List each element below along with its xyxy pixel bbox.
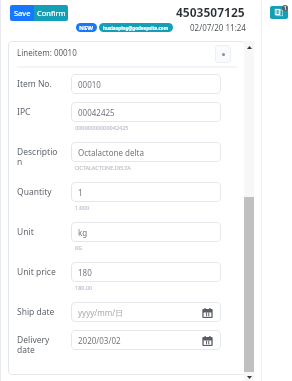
staticText: Description — [17, 146, 58, 167]
button[interactable]: 180 — [71, 262, 221, 282]
staticText: Lineitem: 00010 — [17, 47, 77, 58]
staticText: kg — [78, 227, 213, 238]
staticText: NEW — [79, 24, 94, 32]
staticText: KG — [75, 244, 83, 251]
staticText: Item No. — [17, 78, 58, 90]
staticText: 180.00 — [75, 284, 93, 291]
staticText: Unit — [17, 226, 58, 238]
staticText: Unit price — [17, 266, 58, 278]
staticText: Octalactone delta — [78, 147, 213, 158]
staticText: 1.000 — [75, 204, 90, 211]
staticText: 180 — [78, 267, 213, 278]
staticText: Save — [14, 8, 31, 18]
staticText: Ship date — [17, 306, 58, 318]
staticText: 4503507125 — [176, 4, 245, 20]
button[interactable]: 00010 — [71, 74, 221, 94]
staticText: Confirm — [37, 8, 66, 18]
staticText: Delivery date — [17, 334, 58, 354]
staticText: yyyy/mm/日 — [78, 307, 202, 318]
button[interactable]: 00042425 — [71, 102, 221, 122]
staticText: OCTALACTONE.DELTA — [75, 164, 131, 171]
staticText: 02/07/20 11:24 — [190, 22, 246, 33]
staticText: 00010 — [78, 79, 213, 90]
button[interactable]: Attachments — [270, 6, 288, 19]
staticText: 00000000000042425 — [75, 124, 129, 131]
staticText: huxiaoping@godeepsite.com — [103, 25, 169, 31]
staticText: 1 — [284, 5, 287, 11]
staticText: 2020/03/02 — [78, 335, 202, 346]
button[interactable]: Save — [10, 5, 34, 21]
staticText: Quantity — [17, 186, 58, 198]
button[interactable]: 2020/03/02 — [71, 330, 221, 350]
button[interactable]: Confirm — [34, 5, 68, 21]
staticText: IPC — [17, 106, 58, 118]
button[interactable]: 1 — [71, 182, 221, 202]
button[interactable]: Octalactone delta — [71, 142, 221, 162]
staticText: 1 — [78, 187, 213, 198]
staticText: 00042425 — [78, 107, 213, 118]
button[interactable]: yyyy/mm/日 — [71, 302, 221, 322]
button[interactable]: More options — [215, 45, 231, 63]
button[interactable]: kg — [71, 222, 221, 242]
